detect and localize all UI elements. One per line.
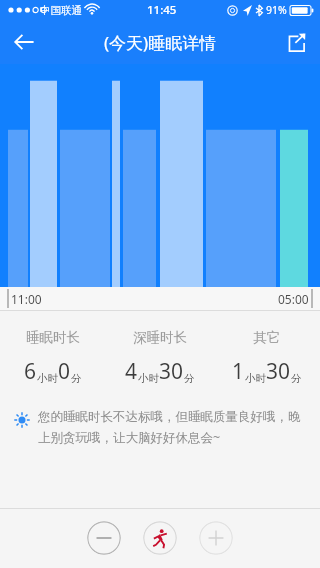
staticText: 11:45 [147, 2, 177, 18]
staticText: 分 [71, 372, 82, 385]
staticText: 小时 [245, 372, 266, 385]
button[interactable]: Share [272, 20, 320, 64]
button[interactable]: Increase [199, 521, 233, 555]
button[interactable]: 其它 [213, 329, 320, 386]
staticText: 6 [24, 357, 37, 386]
button[interactable]: 睡眠时长 [0, 329, 106, 386]
staticText: 分 [184, 372, 195, 385]
staticText: 小时 [37, 372, 58, 385]
staticText: 其它 [253, 329, 280, 346]
button[interactable]: 深睡时长 [106, 329, 213, 386]
staticText: 1 [232, 357, 245, 386]
button[interactable]: Decrease [87, 521, 121, 555]
button[interactable]: Start activity [143, 521, 177, 555]
staticText: 30 [266, 357, 291, 386]
staticText: 30 [159, 357, 184, 386]
button[interactable]: Back [0, 20, 48, 64]
staticText: 深睡时长 [133, 329, 187, 346]
staticText: 0 [58, 357, 71, 386]
staticText: 中国联通 [40, 4, 82, 17]
staticText: (今天)睡眠详情 [104, 31, 217, 54]
staticText: 分 [291, 372, 302, 385]
staticText: 睡眠时长 [26, 329, 80, 346]
staticText: 91% [266, 3, 287, 17]
staticText: 4 [125, 357, 138, 386]
staticText: 05:00 [278, 291, 309, 307]
staticText: 小时 [138, 372, 159, 385]
staticText: 11:00 [11, 291, 42, 307]
staticText: 您的睡眠时长不达标哦，但睡眠质量良好哦，晚上别贪玩哦，让大脑好好休息会~ [38, 409, 302, 446]
